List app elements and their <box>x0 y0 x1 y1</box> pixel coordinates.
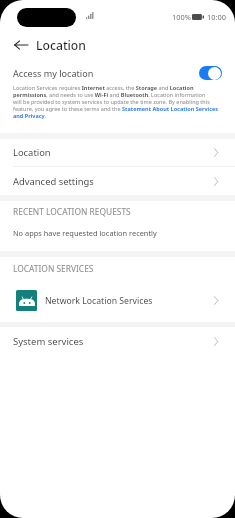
staticText: Location <box>36 37 86 54</box>
staticText: Location Services requires Internet acce… <box>13 84 219 119</box>
button[interactable]: Access my location <box>0 62 235 84</box>
staticText: No apps have requested location recently <box>13 228 157 238</box>
staticText: RECENT LOCATION REQUESTS <box>13 206 131 217</box>
staticText: Network Location Services <box>45 295 153 307</box>
staticText: Access my location <box>13 67 94 79</box>
button[interactable]: Location <box>0 139 235 166</box>
button[interactable]: Advanced settings <box>0 167 235 195</box>
button[interactable]: System services <box>0 327 235 356</box>
button[interactable]: Network Location Services <box>0 288 235 313</box>
staticText: LOCATION SERVICES <box>13 263 94 274</box>
staticText: 100% <box>172 12 191 22</box>
staticText: System services <box>13 335 84 348</box>
staticText: 10:00 <box>207 12 226 22</box>
staticText: Advanced settings <box>13 175 94 188</box>
button[interactable]: Back <box>12 36 30 54</box>
staticText: Location <box>13 146 51 159</box>
